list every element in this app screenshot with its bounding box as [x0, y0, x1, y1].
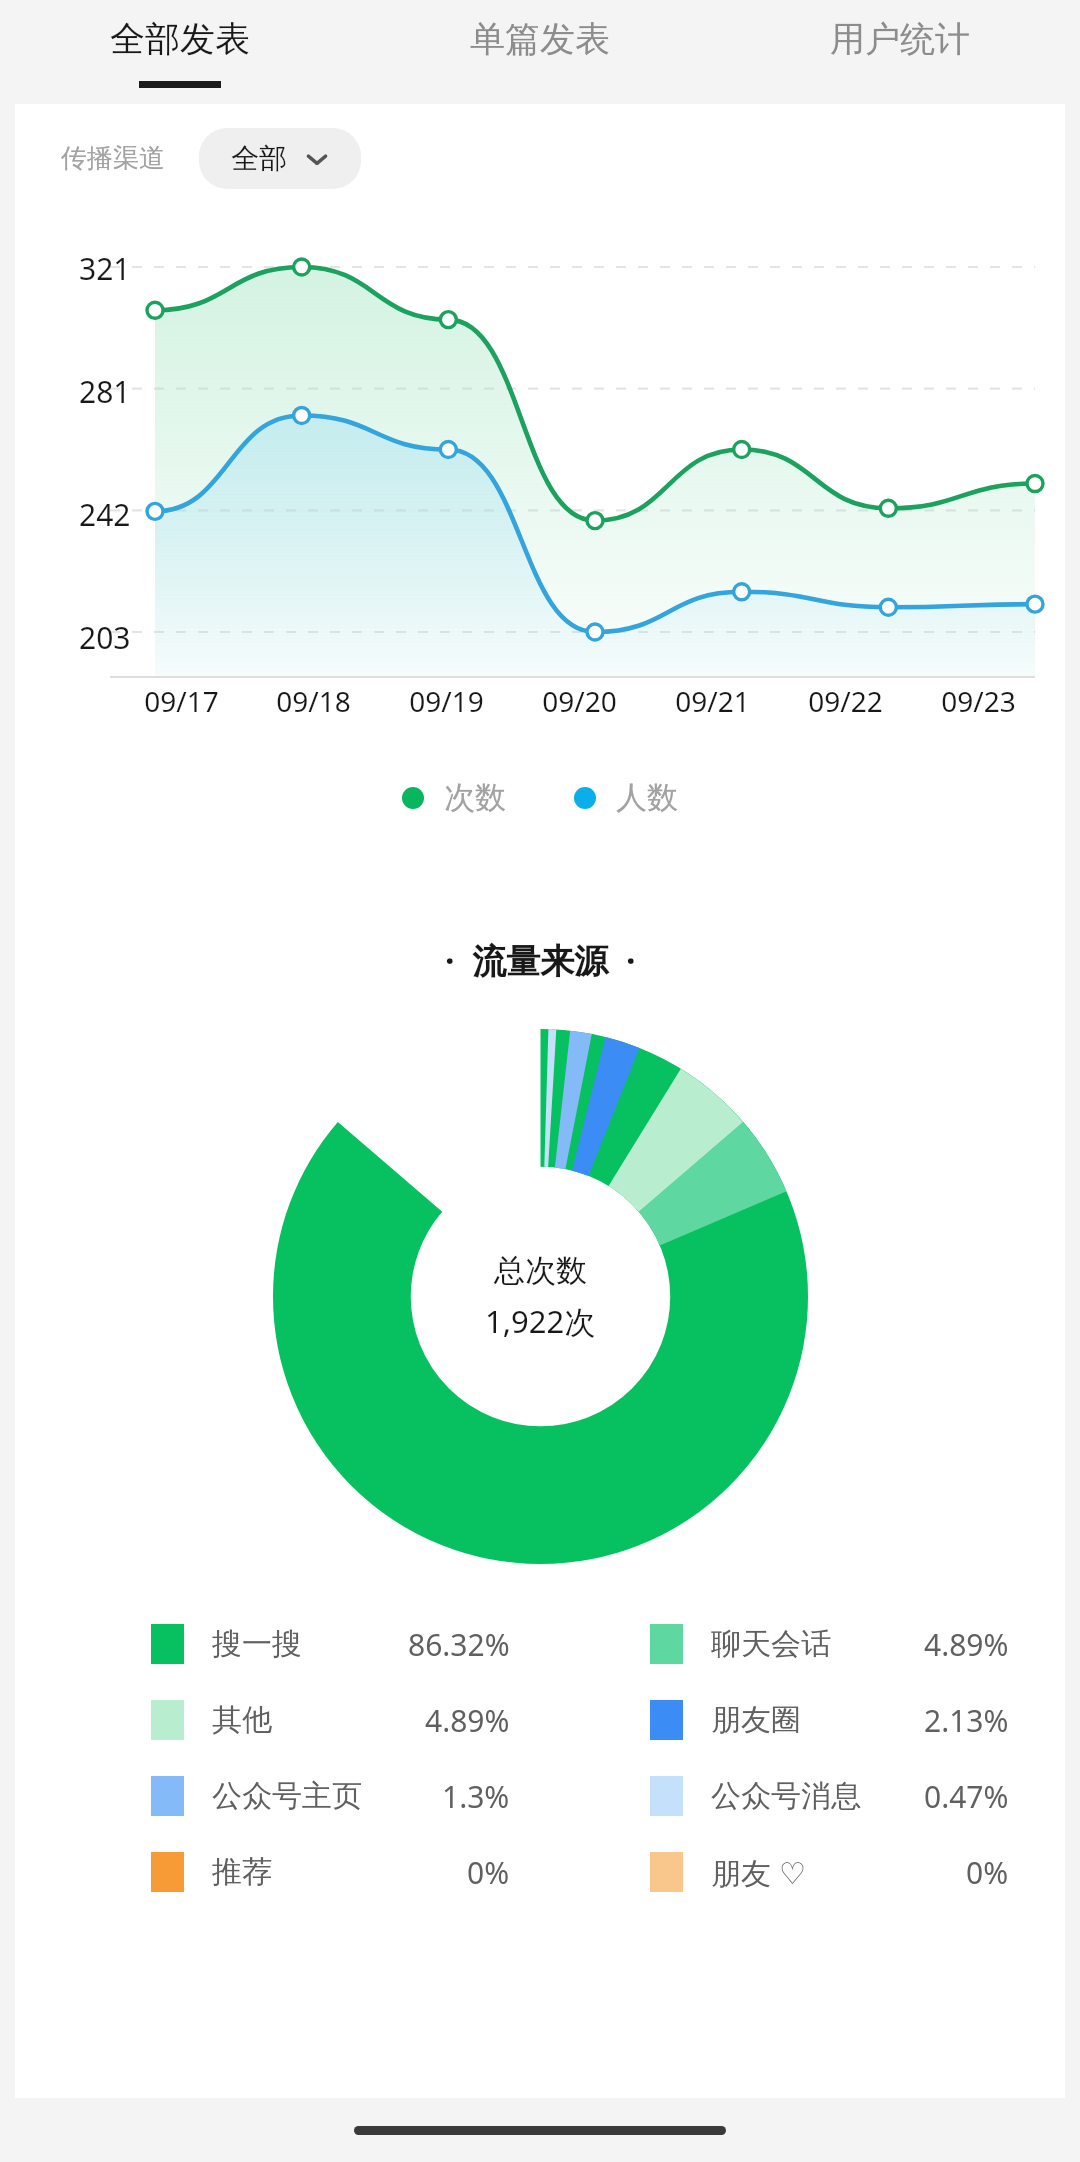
- staticText: 1,922次: [485, 1300, 596, 1342]
- button[interactable]: 全部: [199, 128, 361, 189]
- staticText: 传播渠道: [61, 142, 165, 175]
- staticText: 全部: [231, 141, 287, 176]
- staticText: 09/19: [409, 682, 484, 720]
- button[interactable]: 搜一搜: [41, 1606, 540, 1682]
- staticText: 2.13%: [924, 1700, 1009, 1741]
- button[interactable]: 公众号消息: [540, 1758, 1039, 1834]
- staticText: 86.32%: [408, 1624, 510, 1665]
- staticText: 4.89%: [425, 1700, 510, 1741]
- staticText: 09/17: [144, 682, 219, 720]
- staticText: 09/18: [276, 682, 351, 720]
- staticText: 搜一搜: [212, 1625, 302, 1663]
- staticText: 次数: [444, 778, 506, 817]
- staticText: 203: [79, 617, 131, 658]
- staticText: 242: [79, 494, 131, 535]
- staticText: 推荐: [212, 1853, 272, 1891]
- staticText: 公众号主页: [212, 1777, 362, 1815]
- staticText: 其他: [212, 1701, 272, 1739]
- staticText: · 流量来源 ·: [445, 937, 636, 983]
- button[interactable]: 全部发表: [0, 0, 360, 104]
- button[interactable]: 推荐: [41, 1834, 540, 1910]
- staticText: 公众号消息: [711, 1777, 861, 1815]
- staticText: 4.89%: [924, 1624, 1009, 1665]
- button[interactable]: 朋友圈: [540, 1682, 1039, 1758]
- staticText: 总次数: [494, 1251, 587, 1290]
- staticText: 朋友圈: [711, 1701, 801, 1739]
- staticText: 人数: [616, 778, 678, 817]
- button[interactable]: 公众号主页: [41, 1758, 540, 1834]
- staticText: 281: [79, 371, 131, 412]
- staticText: 朋友 ♡: [711, 1852, 806, 1893]
- button[interactable]: 朋友 ♡: [540, 1834, 1039, 1910]
- staticText: 09/21: [675, 682, 750, 720]
- staticText: 聊天会话: [711, 1625, 831, 1663]
- staticText: 321: [79, 248, 131, 289]
- staticText: 0%: [966, 1852, 1009, 1893]
- staticText: 0%: [467, 1852, 510, 1893]
- staticText: 09/22: [808, 682, 883, 720]
- staticText: 0.47%: [924, 1776, 1009, 1817]
- staticText: 09/23: [941, 682, 1016, 720]
- staticText: 用户统计: [830, 17, 970, 61]
- staticText: 1.3%: [442, 1776, 510, 1817]
- button[interactable]: 其他: [41, 1682, 540, 1758]
- button[interactable]: 用户统计: [720, 0, 1080, 104]
- staticText: 09/20: [542, 682, 617, 720]
- button[interactable]: 聊天会话: [540, 1606, 1039, 1682]
- staticText: 全部发表: [110, 17, 250, 61]
- staticText: 单篇发表: [470, 17, 610, 61]
- button[interactable]: 单篇发表: [360, 0, 720, 104]
